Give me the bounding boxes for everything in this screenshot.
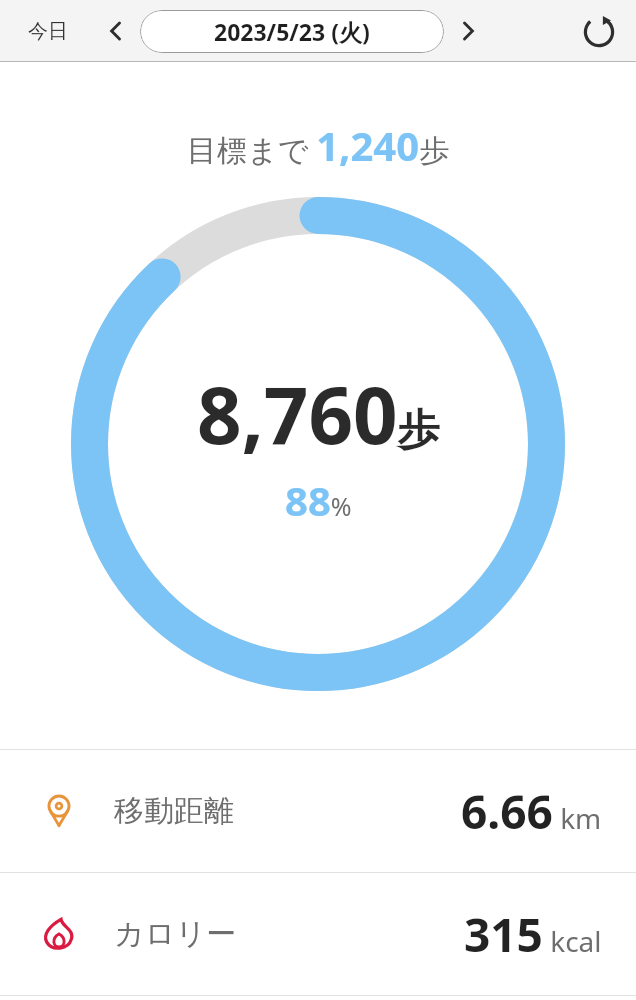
staticText: 315 kcal [464, 903, 602, 966]
staticText: 目標まで 1,240歩 [187, 118, 450, 172]
button[interactable]: Next day [448, 11, 488, 51]
staticText: 2023/5/23 (火) [214, 16, 370, 47]
staticText: 今日 [28, 19, 68, 44]
staticText: 移動距離 [114, 792, 234, 830]
staticText: カロリー [114, 915, 237, 953]
button[interactable]: カロリー [0, 873, 636, 995]
button[interactable]: 移動距離 [0, 750, 636, 872]
staticText: 6.66 km [461, 780, 602, 843]
staticText: 88% [285, 473, 352, 527]
button[interactable]: Previous day [96, 11, 136, 51]
button[interactable]: 今日 [14, 13, 82, 50]
button[interactable]: 2023/5/23 (火) [140, 10, 444, 53]
staticText: 8,760歩 [197, 361, 440, 467]
button[interactable]: Refresh [576, 8, 622, 54]
